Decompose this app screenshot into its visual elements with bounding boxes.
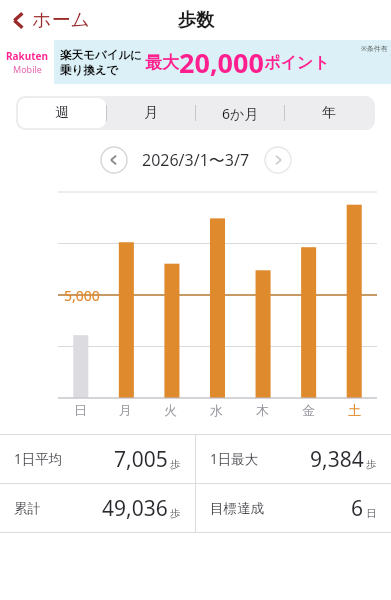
button[interactable]: 前の週 xyxy=(100,146,128,174)
button[interactable]: 6か月 xyxy=(196,98,284,128)
staticText: 楽天モバイルに xyxy=(60,48,142,62)
button[interactable]: 累計 xyxy=(0,484,195,532)
staticText: 木 xyxy=(256,402,269,418)
staticText: 歩 xyxy=(170,458,181,471)
staticText: 土 xyxy=(348,402,361,418)
button[interactable]: Rakuten xyxy=(0,40,391,84)
button[interactable]: 月 xyxy=(107,98,195,128)
staticText: 6 xyxy=(351,494,364,523)
staticText: 日 xyxy=(366,507,377,520)
staticText: 1日最大 xyxy=(210,450,259,468)
button[interactable]: 1日平均 xyxy=(0,435,195,483)
staticText: Mobile xyxy=(13,63,42,75)
staticText: 年 xyxy=(322,104,336,122)
staticText: 歩数 xyxy=(178,9,214,32)
staticText: 乗り換えで xyxy=(60,63,119,77)
staticText: 1日平均 xyxy=(14,450,63,468)
staticText: 水 xyxy=(210,402,223,418)
staticText: 2026/3/1〜3/7 xyxy=(142,149,250,171)
staticText: 9,384 xyxy=(310,445,364,474)
staticText: 6か月 xyxy=(222,104,259,123)
staticText: ※条件有 xyxy=(361,44,388,54)
staticText: 月 xyxy=(144,104,158,122)
staticText: 目標達成 xyxy=(210,500,264,517)
button[interactable]: 目標達成 xyxy=(196,484,391,532)
button[interactable]: 次の週 xyxy=(264,146,292,174)
staticText: 最大 xyxy=(145,52,179,73)
staticText: 日 xyxy=(74,402,87,418)
staticText: 金 xyxy=(302,402,315,418)
button[interactable]: 週 xyxy=(18,98,106,128)
staticText: 週 xyxy=(55,104,69,122)
button[interactable]: 年 xyxy=(285,98,373,128)
button[interactable]: 1日最大 xyxy=(196,435,391,483)
staticText: 月 xyxy=(119,402,132,418)
staticText: 累計 xyxy=(14,500,41,517)
staticText: 7,005 xyxy=(114,445,168,474)
staticText: 歩 xyxy=(170,507,181,520)
staticText: 5,000 xyxy=(64,286,100,305)
staticText: Rakuten xyxy=(6,49,49,63)
staticText: 49,036 xyxy=(102,494,168,523)
button[interactable]: ホーム xyxy=(6,4,96,36)
staticText: 火 xyxy=(164,402,177,418)
staticText: 20,000 xyxy=(179,44,264,81)
staticText: 歩 xyxy=(366,458,377,471)
staticText: ポイント xyxy=(264,53,330,73)
staticText: ホーム xyxy=(32,8,90,32)
